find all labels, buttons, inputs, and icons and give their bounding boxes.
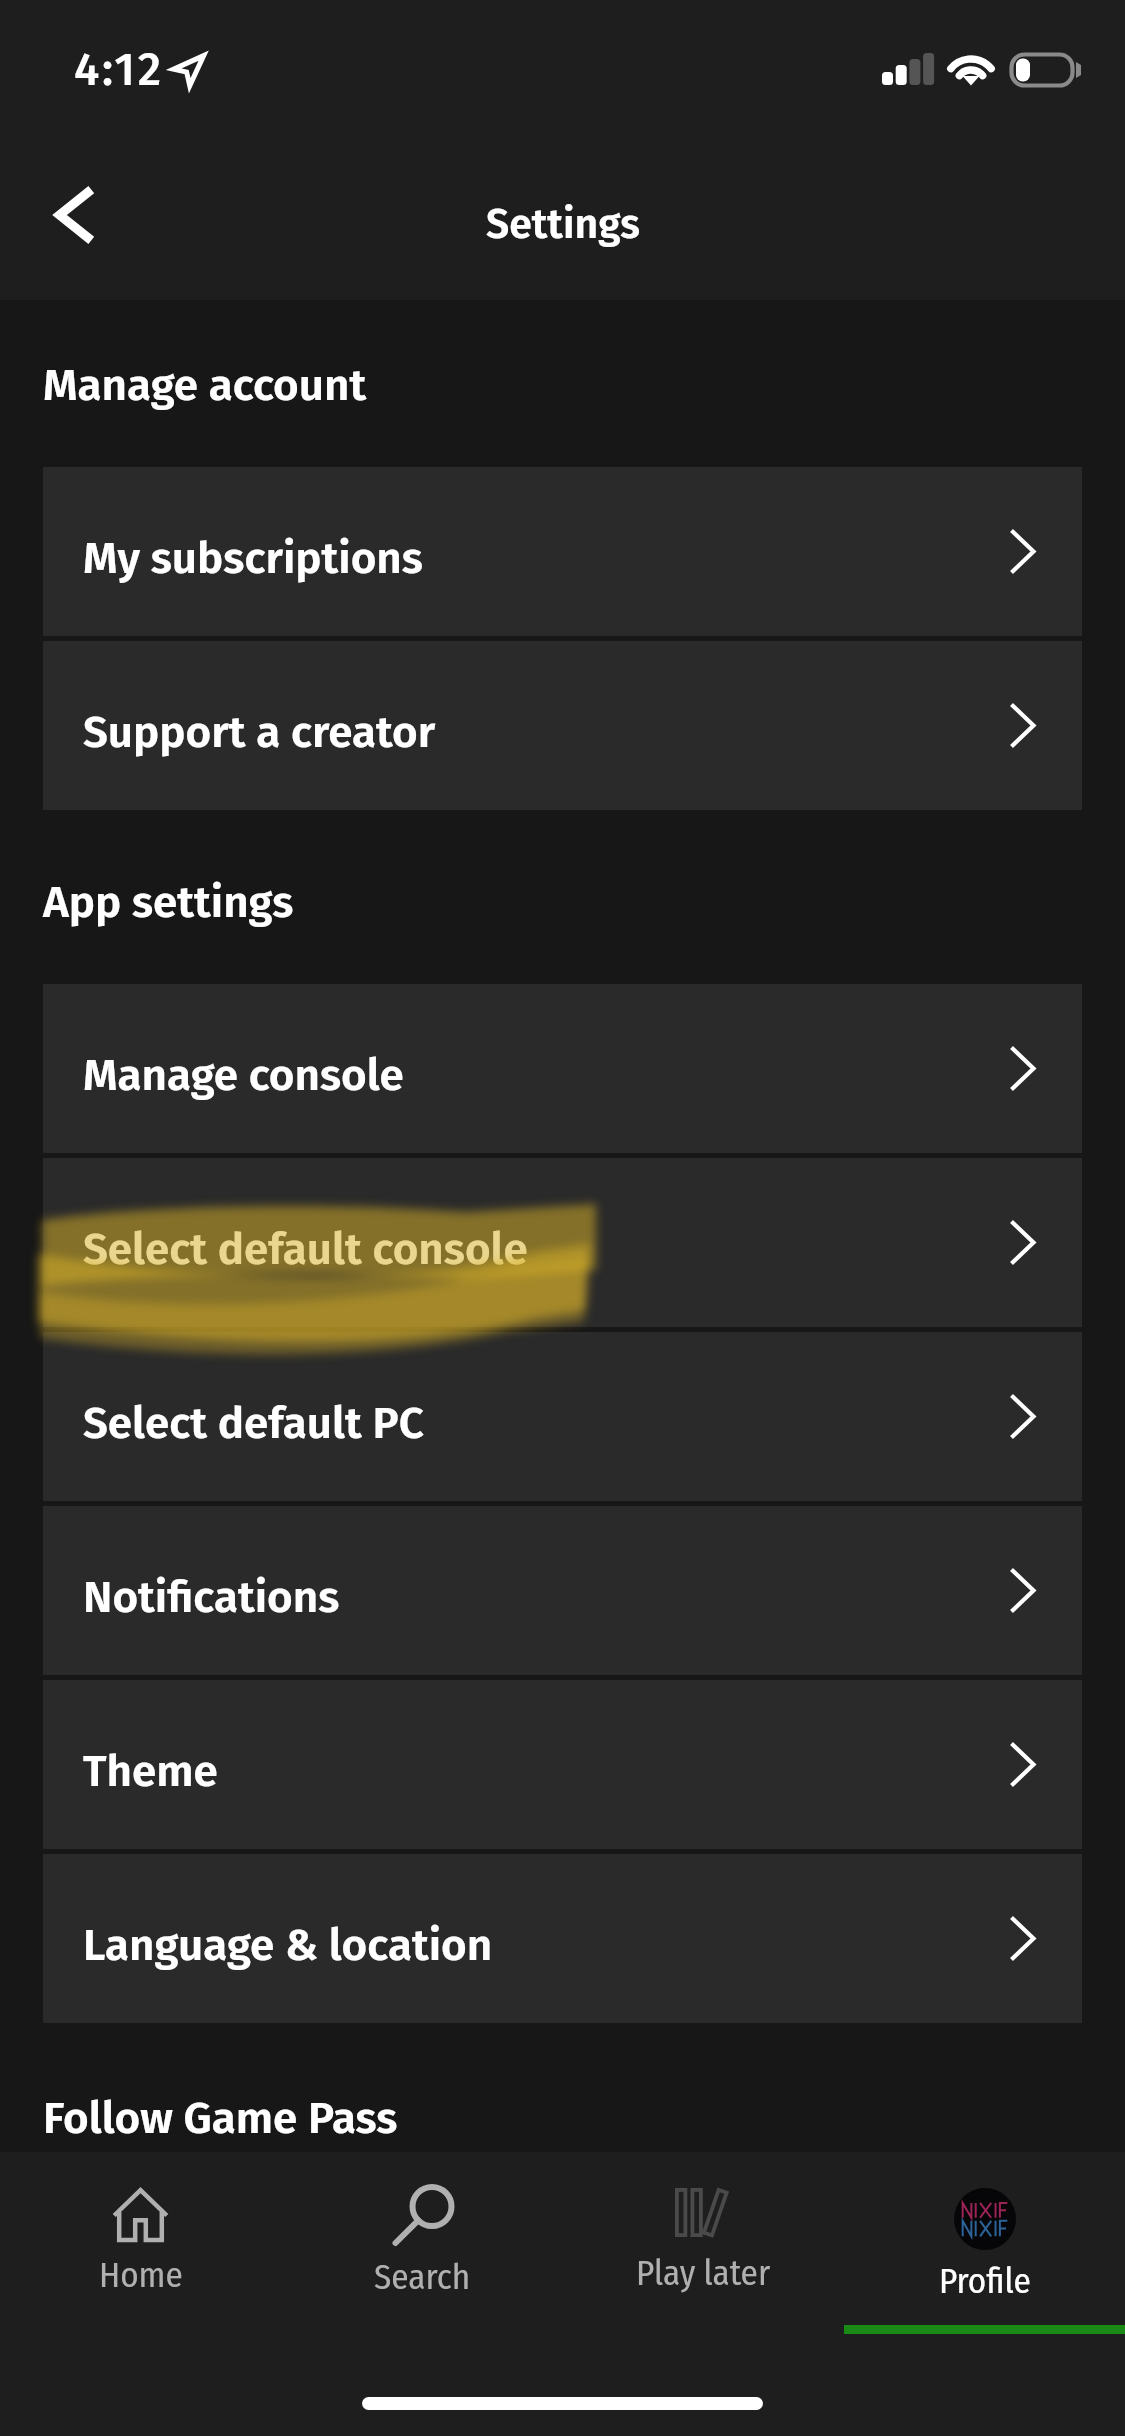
staticText: Settings [486,200,640,249]
staticText: Language & location [83,1919,493,1972]
staticText: Manage account [43,359,367,412]
staticText: Select default PC [83,1397,424,1450]
button[interactable]: My subscriptions [43,467,1082,636]
staticText: Search [374,2256,471,2298]
button[interactable]: Select default console [43,1158,1082,1327]
staticText: Theme [83,1745,218,1798]
button[interactable]: Select default PC [43,1332,1082,1501]
button[interactable]: Language & location [43,1854,1082,2023]
staticText: Profile [939,2260,1031,2302]
button[interactable]: Back [20,160,130,270]
staticText: App settings [43,876,294,929]
staticText: Select default console [83,1223,528,1276]
button[interactable]: Play later [563,2152,844,2436]
button[interactable]: Profile [844,2152,1125,2436]
staticText: Support a creator [83,706,436,759]
staticText: 4:12 [74,42,164,97]
staticText: Home [99,2254,183,2296]
button[interactable]: Search [282,2152,563,2436]
button[interactable]: Notifications [43,1506,1082,1675]
staticText: Notifications [83,1571,340,1624]
staticText: Play later [636,2252,771,2294]
button[interactable]: Support a creator [43,641,1082,810]
staticText: My subscriptions [83,532,423,585]
button[interactable]: Theme [43,1680,1082,1849]
staticText: Manage console [83,1049,404,1102]
button[interactable]: Home [0,2152,282,2436]
button[interactable]: Manage console [43,984,1082,1153]
staticText: Follow Game Pass [43,2092,398,2145]
